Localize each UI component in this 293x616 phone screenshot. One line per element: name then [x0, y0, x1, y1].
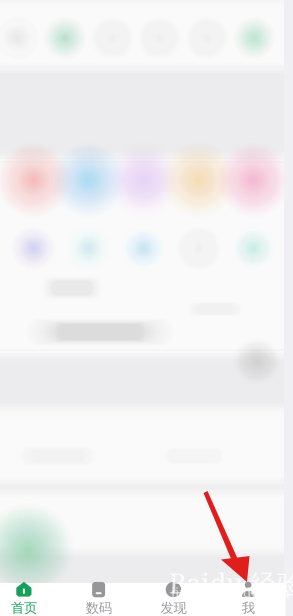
button[interactable]: 我	[211, 580, 286, 616]
staticText: 我	[242, 600, 255, 616]
staticText: 首页	[11, 600, 37, 616]
staticText: 数码	[86, 600, 112, 616]
staticText: jingyan.baidu.com	[171, 583, 290, 601]
button[interactable]: 首页	[0, 580, 61, 616]
button[interactable]: 数码	[61, 580, 136, 616]
button[interactable]: 发现	[136, 580, 211, 616]
staticText: 发现	[160, 600, 186, 616]
staticText: Baidu 经验	[169, 565, 293, 601]
